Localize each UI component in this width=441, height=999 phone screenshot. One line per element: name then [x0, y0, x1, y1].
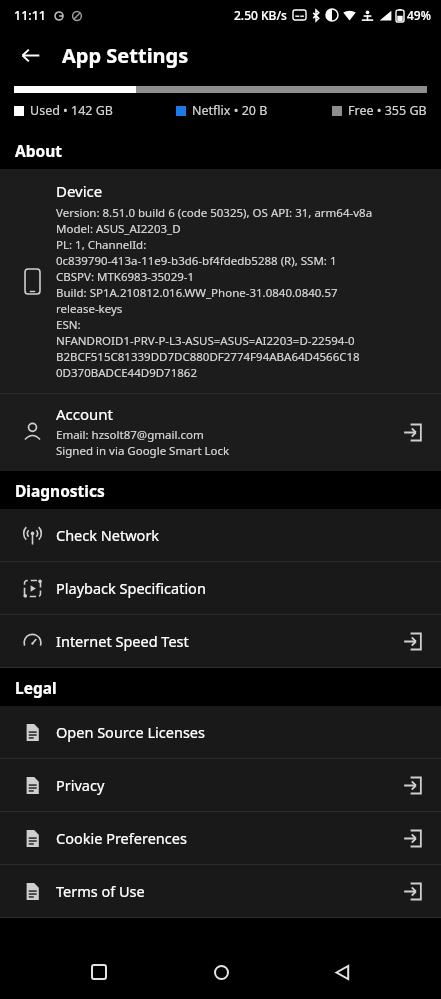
- staticText: Version: 8.51.0 build 6 (code 50325), OS…: [56, 205, 373, 381]
- staticText: App Settings: [62, 42, 189, 69]
- button[interactable]: Recent apps: [76, 949, 122, 995]
- button[interactable]: Terms of Use: [0, 865, 441, 917]
- button[interactable]: Home: [198, 949, 244, 995]
- staticText: Legal: [15, 677, 57, 698]
- button[interactable]: Open Terms of Use: [395, 874, 429, 908]
- button[interactable]: Back: [10, 35, 50, 75]
- staticText: Internet Speed Test: [56, 631, 395, 651]
- button[interactable]: Open Privacy: [395, 768, 429, 802]
- button[interactable]: Check Network: [0, 509, 441, 561]
- staticText: Used • 142 GB: [30, 102, 113, 119]
- staticText: Open Source Licenses: [56, 722, 429, 742]
- staticText: Account: [56, 404, 114, 424]
- button[interactable]: Sign out: [395, 415, 429, 449]
- button[interactable]: Playback Specification: [0, 562, 441, 614]
- button[interactable]: Internet Speed Test: [0, 615, 441, 667]
- staticText: Netflix • 20 B: [192, 102, 268, 119]
- staticText: Playback Specification: [56, 578, 429, 598]
- button[interactable]: Cookie Preferences: [0, 812, 441, 864]
- button[interactable]: Open Cookie Preferences: [395, 821, 429, 855]
- staticText: Diagnostics: [15, 480, 105, 501]
- button[interactable]: Open Source Licenses: [0, 706, 441, 758]
- button[interactable]: Back: [319, 949, 365, 995]
- button[interactable]: Open Internet Speed Test: [395, 624, 429, 658]
- staticText: 11:11: [14, 7, 47, 24]
- staticText: Email: hzsolt87@gmail.com Signed in via …: [56, 427, 230, 459]
- staticText: Privacy: [56, 775, 395, 795]
- button[interactable]: Account: [0, 394, 441, 471]
- staticText: About: [15, 140, 63, 161]
- staticText: Device: [56, 181, 103, 201]
- staticText: Terms of Use: [56, 881, 395, 901]
- staticText: 2.50 KB/s: [234, 7, 287, 23]
- button[interactable]: Device: [0, 169, 441, 393]
- staticText: Free • 355 GB: [348, 102, 427, 119]
- staticText: Cookie Preferences: [56, 828, 395, 848]
- staticText: 49%: [407, 7, 431, 23]
- staticText: Check Network: [56, 525, 429, 545]
- button[interactable]: Privacy: [0, 759, 441, 811]
